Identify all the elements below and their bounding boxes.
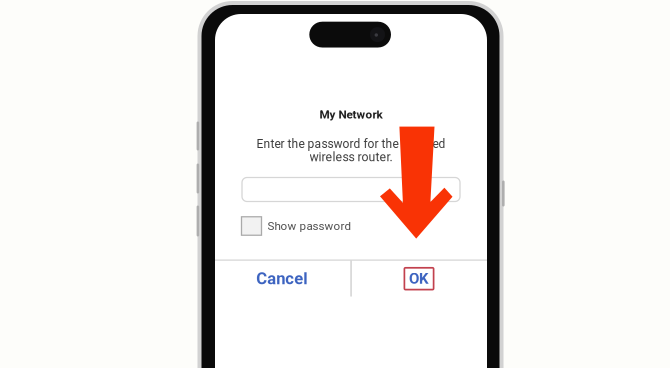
staticText: Show password — [267, 219, 351, 233]
button[interactable]: Show password — [241, 217, 401, 235]
staticText: OK — [409, 270, 429, 288]
staticText: Cancel — [256, 269, 307, 288]
button[interactable]: Password — [242, 177, 460, 201]
button[interactable]: Cancel — [214, 261, 350, 297]
staticText: Enter the password for the selected — [256, 137, 445, 151]
button[interactable]: OK — [351, 261, 487, 297]
staticText: wireless router. — [309, 150, 392, 164]
staticText: My Network — [319, 108, 382, 121]
